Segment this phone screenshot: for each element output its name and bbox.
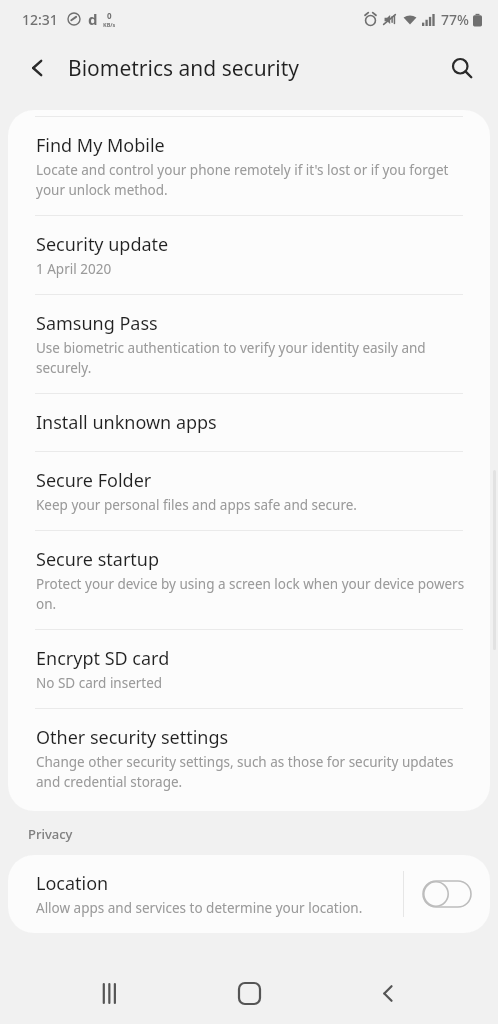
button[interactable]: Encrypt SD card bbox=[8, 630, 490, 708]
staticText: Change other security settings, such as … bbox=[36, 753, 466, 791]
button[interactable]: Location toggle bbox=[420, 874, 474, 914]
button[interactable]: Other security settings bbox=[8, 709, 490, 807]
button[interactable]: Recents bbox=[83, 965, 139, 1021]
button[interactable]: Back bbox=[360, 965, 416, 1021]
button[interactable]: Security update bbox=[8, 216, 490, 294]
staticText: KB/s bbox=[103, 21, 116, 28]
staticText: d bbox=[88, 9, 98, 29]
staticText: Encrypt SD card bbox=[36, 646, 170, 671]
button[interactable]: Location bbox=[8, 855, 403, 933]
staticText: Samsung Pass bbox=[36, 311, 158, 336]
button[interactable]: Samsung Pass bbox=[8, 295, 490, 393]
button[interactable]: Back bbox=[16, 46, 60, 90]
staticText: 0 bbox=[107, 10, 112, 21]
staticText: Protect your device by using a screen lo… bbox=[36, 575, 466, 613]
button[interactable]: Search bbox=[440, 46, 484, 90]
staticText: No SD card inserted bbox=[36, 674, 163, 692]
button[interactable]: Home bbox=[221, 965, 277, 1021]
staticText: 1 April 2020 bbox=[36, 260, 112, 278]
staticText: Other security settings bbox=[36, 725, 229, 750]
staticText: Allow apps and services to determine you… bbox=[36, 899, 363, 917]
button[interactable]: Install unknown apps bbox=[8, 394, 490, 451]
staticText: Biometrics and security bbox=[68, 54, 299, 83]
staticText: Location bbox=[36, 871, 109, 896]
staticText: Privacy bbox=[28, 825, 73, 843]
staticText: Security update bbox=[36, 232, 169, 257]
staticText: Install unknown apps bbox=[36, 410, 217, 435]
button[interactable]: Secure Folder bbox=[8, 452, 490, 530]
staticText: Locate and control your phone remotely i… bbox=[36, 161, 466, 199]
staticText: Secure Folder bbox=[36, 468, 152, 493]
staticText: Secure startup bbox=[36, 547, 160, 572]
staticText: 77% bbox=[441, 10, 469, 29]
staticText: Find My Mobile bbox=[36, 133, 165, 158]
button[interactable]: Find My Mobile bbox=[8, 117, 490, 215]
staticText: Use biometric authentication to verify y… bbox=[36, 339, 466, 377]
staticText: 12:31 bbox=[22, 10, 58, 29]
button[interactable]: Secure startup bbox=[8, 531, 490, 629]
staticText: Keep your personal files and apps safe a… bbox=[36, 496, 357, 514]
